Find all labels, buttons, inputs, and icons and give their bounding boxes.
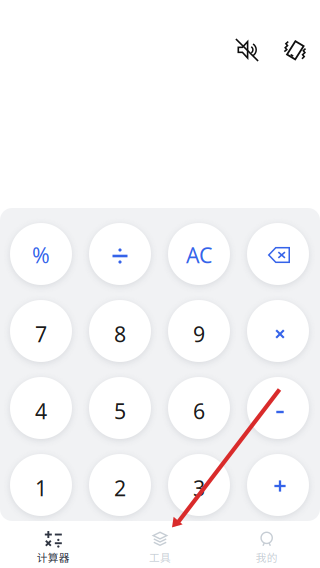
- button[interactable]: 6: [168, 377, 230, 439]
- button[interactable]: %: [10, 223, 72, 285]
- staticText: 9: [193, 320, 205, 348]
- button[interactable]: Minus: [247, 377, 309, 439]
- staticText: 6: [193, 397, 205, 425]
- staticText: 计算器: [37, 549, 70, 565]
- staticText: 3: [193, 474, 205, 502]
- button[interactable]: 9: [168, 300, 230, 362]
- button[interactable]: 7: [10, 300, 72, 362]
- button[interactable]: Plus: [247, 454, 309, 516]
- button[interactable]: AC: [168, 223, 230, 285]
- button[interactable]: 5: [89, 377, 151, 439]
- button[interactable]: 我的: [213, 521, 320, 568]
- button[interactable]: Divide: [89, 223, 151, 285]
- staticText: 我的: [256, 549, 278, 565]
- button[interactable]: 3: [168, 454, 230, 516]
- button[interactable]: Multiply: [247, 300, 309, 362]
- staticText: 2: [114, 474, 126, 502]
- button[interactable]: 计算器: [0, 521, 107, 568]
- button[interactable]: Vibrate: [283, 38, 307, 62]
- button[interactable]: 8: [89, 300, 151, 362]
- staticText: 4: [35, 397, 47, 425]
- button[interactable]: 2: [89, 454, 151, 516]
- button[interactable]: 4: [10, 377, 72, 439]
- button[interactable]: 1: [10, 454, 72, 516]
- staticText: AC: [186, 241, 212, 269]
- button[interactable]: 工具: [107, 521, 213, 568]
- staticText: 1: [35, 474, 47, 502]
- staticText: 8: [114, 320, 126, 348]
- button[interactable]: Backspace: [247, 223, 309, 285]
- button[interactable]: Sound off: [235, 38, 259, 62]
- staticText: 7: [35, 320, 47, 348]
- staticText: 5: [114, 397, 126, 425]
- staticText: 工具: [149, 549, 171, 565]
- staticText: %: [32, 241, 50, 269]
